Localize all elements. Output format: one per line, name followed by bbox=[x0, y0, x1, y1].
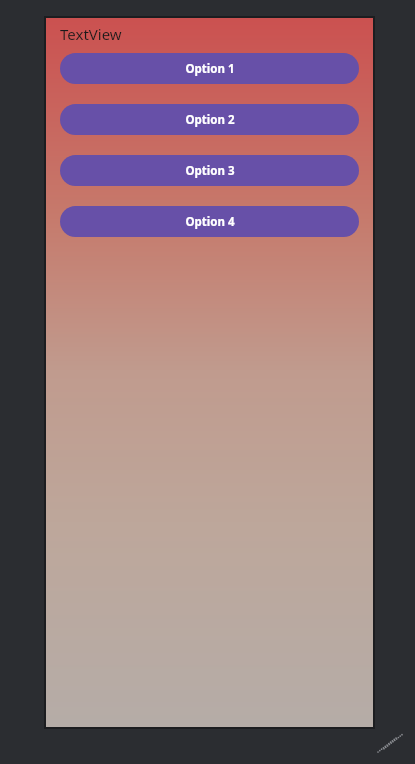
button[interactable]: Option 1 bbox=[60, 53, 359, 84]
button[interactable]: Option 4 bbox=[60, 206, 359, 237]
staticText: Option 3 bbox=[185, 163, 235, 179]
staticText: TextView bbox=[60, 24, 122, 44]
staticText: Option 4 bbox=[185, 214, 235, 230]
staticText: Option 1 bbox=[185, 61, 235, 77]
other: Resize bbox=[376, 730, 406, 756]
staticText: Option 2 bbox=[185, 112, 235, 128]
button[interactable]: Option 3 bbox=[60, 155, 359, 186]
button[interactable]: Option 2 bbox=[60, 104, 359, 135]
